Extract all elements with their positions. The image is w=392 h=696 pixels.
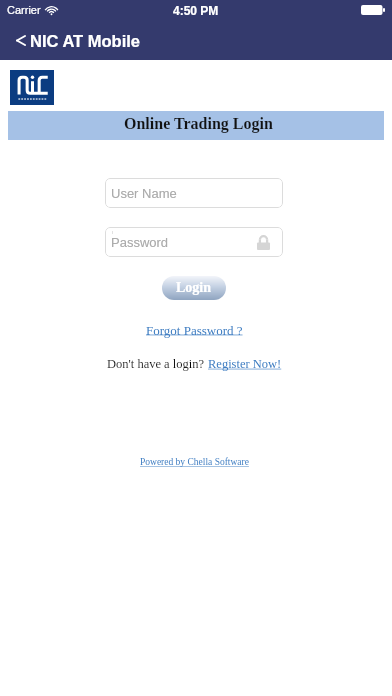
button[interactable]: User Name bbox=[105, 178, 283, 208]
button[interactable]: Forgot Password ? bbox=[146, 323, 243, 337]
button[interactable]: Powered by Chella Software bbox=[140, 457, 249, 468]
staticText: Login bbox=[176, 280, 212, 296]
button[interactable]: Register Now! bbox=[208, 357, 282, 371]
staticText: Powered by Chella Software bbox=[140, 457, 249, 468]
staticText: Online Trading Login bbox=[124, 115, 273, 133]
staticText: Password bbox=[111, 235, 169, 250]
button[interactable]: Back bbox=[14, 25, 142, 55]
staticText: NIC AT Mobile bbox=[30, 32, 140, 50]
staticText: Register Now! bbox=[208, 357, 282, 371]
staticText: Forgot Password ? bbox=[146, 323, 243, 337]
button[interactable]: Password bbox=[105, 227, 283, 257]
other: Back bbox=[16, 35, 26, 46]
staticText: Carrier bbox=[7, 4, 41, 16]
staticText: 4:50 PM bbox=[173, 4, 219, 17]
button[interactable]: Login bbox=[162, 276, 226, 300]
staticText: Don't have a login? bbox=[107, 357, 208, 371]
staticText: User Name bbox=[111, 186, 177, 201]
